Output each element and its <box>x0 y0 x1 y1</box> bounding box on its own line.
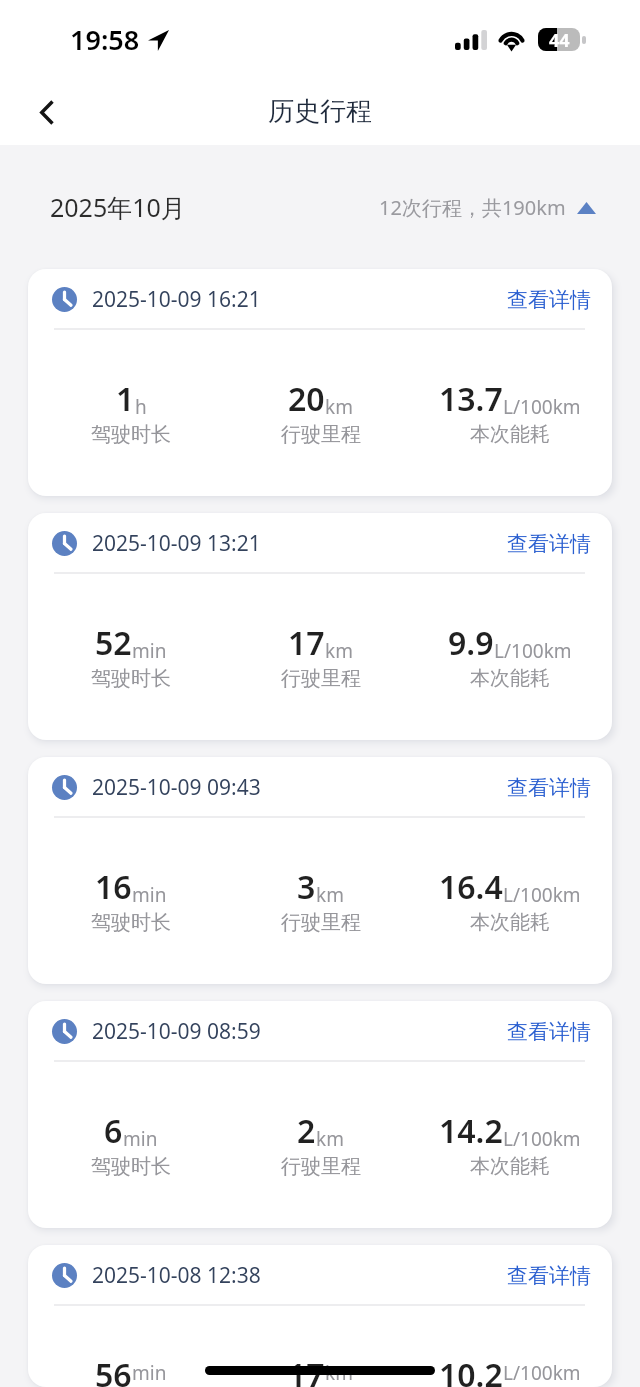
staticText: km <box>316 882 344 908</box>
staticText: 1 <box>116 377 135 421</box>
staticText: 行驶里程 <box>281 666 361 691</box>
staticText: 本次能耗 <box>470 1154 550 1179</box>
staticText: 17 <box>288 621 325 665</box>
button[interactable]: 查看详情 <box>507 528 591 559</box>
staticText: 2 <box>297 1109 316 1153</box>
staticText: 查看详情 <box>507 287 591 313</box>
staticText: 16 <box>95 865 132 909</box>
staticText: 本次能耗 <box>470 666 550 691</box>
staticText: 13.7 <box>439 377 503 421</box>
staticText: 查看详情 <box>507 531 591 557</box>
staticText: 19:58 <box>70 21 140 58</box>
staticText: 20 <box>288 377 325 421</box>
staticText: 2025-10-09 09:43 <box>92 773 261 802</box>
button[interactable]: 2025-10-09 16:21 <box>28 269 612 496</box>
staticText: 查看详情 <box>507 1263 591 1289</box>
staticText: h <box>135 394 147 420</box>
staticText: 2025-10-08 12:38 <box>92 1261 261 1290</box>
button[interactable]: 12次行程，共190km <box>379 194 596 221</box>
staticText: km <box>316 1126 344 1152</box>
staticText: 查看详情 <box>507 1019 591 1045</box>
staticText: min <box>132 638 167 664</box>
button[interactable]: Back <box>24 90 68 134</box>
staticText: 驾驶时长 <box>91 910 171 935</box>
staticText: L/100km <box>503 394 581 420</box>
staticText: 2025-10-09 13:21 <box>92 529 261 558</box>
staticText: 行驶里程 <box>281 910 361 935</box>
staticText: min <box>132 1360 167 1386</box>
staticText: 驾驶时长 <box>91 1154 171 1179</box>
staticText: 9.9 <box>448 621 494 665</box>
staticText: 2025-10-09 08:59 <box>92 1017 261 1046</box>
staticText: 12次行程，共190km <box>379 194 566 221</box>
staticText: L/100km <box>503 1360 581 1386</box>
staticText: 行驶里程 <box>281 1154 361 1179</box>
staticText: 56 <box>95 1353 132 1387</box>
staticText: 本次能耗 <box>470 422 550 447</box>
staticText: 历史行程 <box>268 95 372 128</box>
button[interactable]: 查看详情 <box>507 1016 591 1047</box>
staticText: 行驶里程 <box>281 422 361 447</box>
staticText: km <box>325 394 353 420</box>
button[interactable]: 查看详情 <box>507 772 591 803</box>
button[interactable]: 查看详情 <box>507 1260 591 1291</box>
staticText: L/100km <box>494 638 572 664</box>
staticText: 16.4 <box>439 865 503 909</box>
button[interactable]: 查看详情 <box>507 284 591 315</box>
staticText: L/100km <box>503 882 581 908</box>
staticText: 2025-10-09 16:21 <box>92 285 261 314</box>
staticText: 17 <box>288 1353 325 1387</box>
button[interactable]: 2025-10-09 09:43 <box>28 757 612 984</box>
staticText: 查看详情 <box>507 775 591 801</box>
staticText: 驾驶时长 <box>91 422 171 447</box>
staticText: min <box>132 882 167 908</box>
staticText: L/100km <box>503 1126 581 1152</box>
button[interactable]: 2025-10-08 12:38 <box>28 1245 612 1387</box>
staticText: min <box>123 1126 158 1152</box>
staticText: 6 <box>104 1109 123 1153</box>
staticText: 2025年10月 <box>50 190 186 224</box>
button[interactable]: 2025-10-09 13:21 <box>28 513 612 740</box>
staticText: 14.2 <box>439 1109 503 1153</box>
button[interactable]: 2025-10-09 08:59 <box>28 1001 612 1228</box>
staticText: 52 <box>95 621 132 665</box>
staticText: km <box>325 638 353 664</box>
staticText: km <box>325 1360 353 1386</box>
staticText: 本次能耗 <box>470 910 550 935</box>
staticText: 驾驶时长 <box>91 666 171 691</box>
staticText: 44 <box>549 28 570 51</box>
staticText: 10.2 <box>439 1353 503 1387</box>
staticText: 3 <box>297 865 316 909</box>
